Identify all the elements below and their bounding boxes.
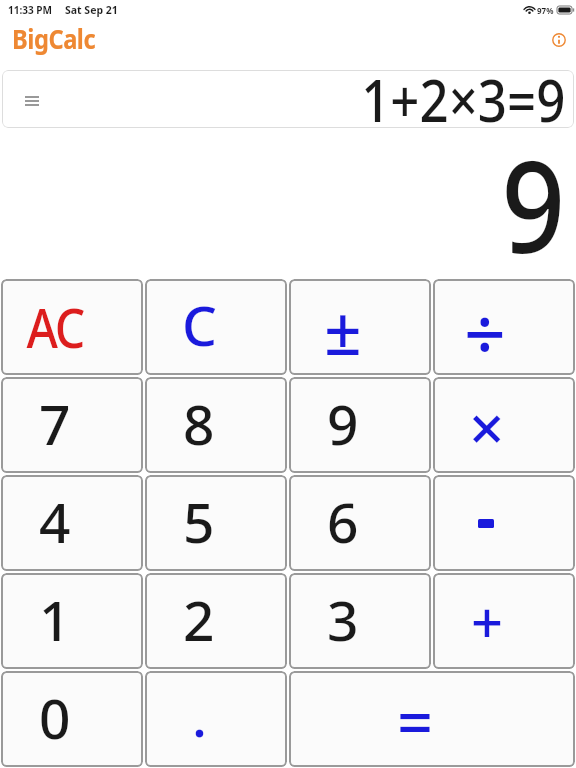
staticText: 0 [39, 680, 71, 755]
button[interactable]: 8 [145, 377, 287, 473]
staticText: 8 [183, 386, 215, 461]
staticText: C [182, 287, 217, 362]
button[interactable]: 7 [1, 377, 143, 473]
button[interactable]: C [145, 279, 287, 375]
button[interactable]: 2 [145, 573, 287, 669]
button[interactable]: . [145, 671, 287, 767]
button[interactable]: 0 [1, 671, 143, 767]
button[interactable] [25, 96, 39, 106]
button[interactable]: 1+2×3=9 [2, 70, 574, 128]
button[interactable]: 4 [1, 475, 143, 571]
staticText: Sat Sep 21 [65, 3, 118, 17]
staticText: 11:33 PM [8, 3, 52, 17]
button[interactable]: = [289, 671, 575, 767]
staticText: 4 [39, 484, 71, 559]
staticText: ÷ [464, 283, 506, 375]
button[interactable]: AC [1, 279, 143, 375]
button[interactable]: 5 [145, 475, 287, 571]
staticText: 9 [327, 386, 359, 461]
staticText: ± [324, 284, 362, 374]
staticText: 9 [502, 116, 566, 266]
staticText: 6 [327, 484, 359, 559]
staticText: 7 [39, 386, 71, 461]
button[interactable]: × [433, 377, 575, 473]
staticText: AC [26, 290, 83, 364]
staticText: 2 [183, 582, 215, 657]
staticText: 97% [537, 5, 554, 16]
staticText: = [397, 679, 434, 765]
staticText: 1+2×3=9 [361, 70, 566, 118]
button[interactable]: 6 [289, 475, 431, 571]
staticText: 5 [183, 484, 215, 559]
button[interactable]: + [433, 573, 575, 669]
button[interactable]: 3 [289, 573, 431, 669]
staticText: BigCalc [12, 21, 96, 56]
button[interactable]: ± [289, 279, 431, 375]
button[interactable]: 9 [289, 377, 431, 473]
button[interactable] [552, 33, 566, 47]
staticText: 1 [39, 582, 71, 657]
staticText: + [471, 583, 504, 659]
staticText: 3 [327, 582, 359, 657]
button[interactable]: ÷ [433, 279, 575, 375]
staticText: × [469, 385, 505, 469]
button[interactable] [433, 475, 575, 571]
button[interactable]: 1 [1, 573, 143, 669]
staticText: . [192, 678, 207, 753]
